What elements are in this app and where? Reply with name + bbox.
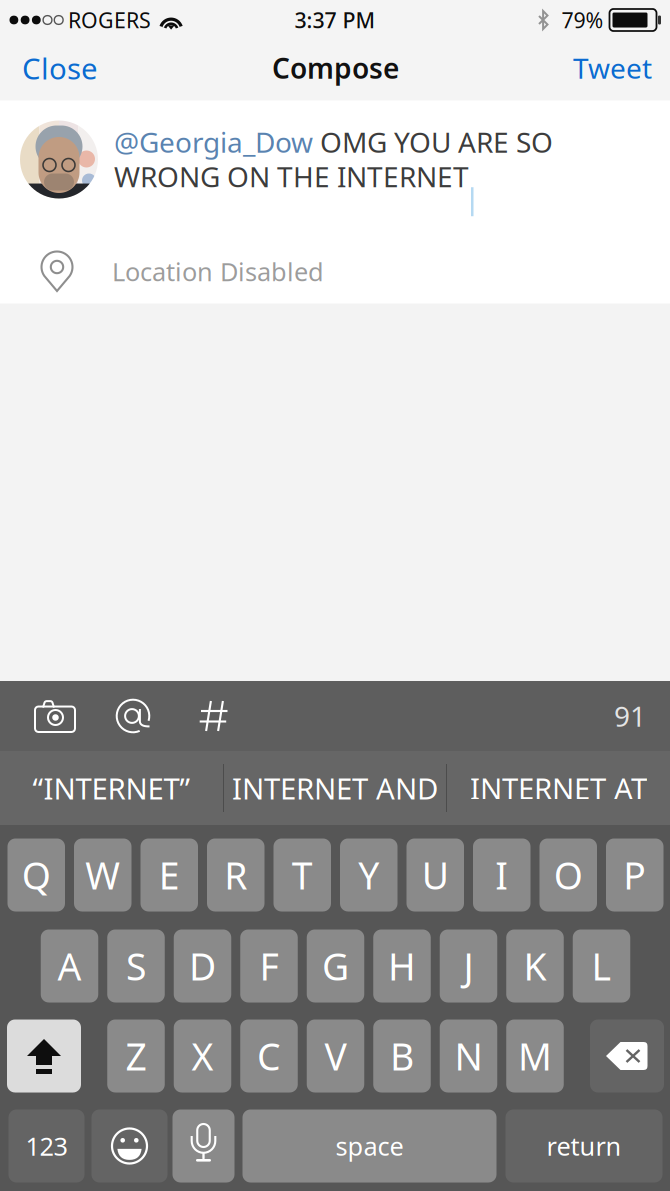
button[interactable]: Emoji keyboard bbox=[91, 1109, 167, 1182]
button[interactable]: X bbox=[174, 1019, 231, 1092]
button[interactable]: Z bbox=[107, 1019, 165, 1092]
staticText: E bbox=[159, 850, 180, 900]
staticText: Location Disabled bbox=[112, 255, 324, 288]
staticText: Close bbox=[22, 48, 98, 87]
staticText: @Georgia_Dow bbox=[114, 123, 313, 161]
button[interactable]: Close bbox=[0, 36, 124, 99]
staticText: I bbox=[495, 850, 508, 900]
button[interactable]: R bbox=[207, 838, 264, 911]
staticText: Compose bbox=[272, 49, 399, 87]
staticText: D bbox=[189, 941, 216, 991]
staticText: H bbox=[388, 941, 416, 991]
button[interactable]: A bbox=[41, 929, 98, 1002]
button[interactable]: Q bbox=[7, 838, 65, 911]
button[interactable]: F bbox=[240, 929, 298, 1002]
staticText: F bbox=[259, 941, 278, 991]
staticText: 3:37 PM bbox=[294, 6, 375, 34]
button[interactable]: V bbox=[307, 1019, 364, 1092]
button[interactable]: S bbox=[107, 929, 165, 1002]
button[interactable]: Location Disabled bbox=[0, 242, 670, 300]
button[interactable]: N bbox=[440, 1019, 497, 1092]
button[interactable]: space bbox=[242, 1109, 496, 1182]
staticText: INTERNET AT bbox=[470, 768, 647, 807]
staticText: O bbox=[554, 850, 583, 900]
staticText: space bbox=[335, 1129, 403, 1163]
staticText: N bbox=[454, 1031, 482, 1081]
button[interactable]: Y bbox=[340, 838, 397, 911]
staticText: S bbox=[126, 941, 146, 991]
staticText: 91 bbox=[614, 697, 646, 735]
staticText: Z bbox=[125, 1031, 146, 1081]
button[interactable]: Dictation bbox=[172, 1109, 234, 1182]
staticText: ROGERS bbox=[68, 6, 151, 34]
button[interactable]: T bbox=[273, 838, 331, 911]
staticText: L bbox=[591, 941, 611, 991]
staticText: M bbox=[518, 1031, 552, 1081]
button[interactable]: INTERNET AT bbox=[447, 751, 670, 825]
button[interactable]: INTERNET AND bbox=[224, 751, 446, 825]
staticText: C bbox=[257, 1031, 281, 1081]
button[interactable]: “INTERNET” bbox=[0, 751, 223, 825]
button[interactable]: B bbox=[373, 1019, 431, 1092]
staticText: B bbox=[390, 1031, 414, 1081]
button[interactable]: L bbox=[573, 929, 630, 1002]
button[interactable]: K bbox=[506, 929, 564, 1002]
staticText: Tweet bbox=[573, 49, 652, 87]
button[interactable]: H bbox=[373, 929, 431, 1002]
staticText: 123 bbox=[25, 1129, 67, 1163]
staticText: “INTERNET” bbox=[32, 768, 190, 807]
staticText: A bbox=[57, 941, 81, 991]
button[interactable]: 123 bbox=[8, 1109, 84, 1182]
button[interactable]: Add hashtag bbox=[176, 681, 252, 751]
staticText: INTERNET AND bbox=[232, 768, 438, 807]
staticText: OMG YOU ARE SO bbox=[313, 123, 553, 161]
button[interactable]: Tweet bbox=[547, 36, 670, 99]
button[interactable]: P bbox=[606, 838, 663, 911]
button[interactable]: G bbox=[307, 929, 364, 1002]
staticText: U bbox=[422, 850, 449, 900]
staticText: R bbox=[224, 850, 247, 900]
staticText: J bbox=[463, 941, 473, 991]
button[interactable]: Shift bbox=[7, 1019, 81, 1092]
staticText: V bbox=[324, 1031, 346, 1081]
button[interactable]: C bbox=[240, 1019, 298, 1092]
button[interactable]: W bbox=[74, 838, 131, 911]
staticText: T bbox=[292, 850, 313, 900]
button[interactable]: M bbox=[506, 1019, 564, 1092]
staticText: return bbox=[546, 1129, 621, 1163]
staticText: K bbox=[523, 941, 546, 991]
staticText: Q bbox=[22, 850, 51, 900]
staticText: Y bbox=[358, 850, 379, 900]
button[interactable]: O bbox=[539, 838, 597, 911]
button[interactable]: Add photo bbox=[18, 681, 92, 751]
staticText: WRONG ON THE INTERNET bbox=[114, 158, 469, 195]
staticText: P bbox=[623, 850, 646, 900]
staticText: X bbox=[191, 1031, 213, 1081]
staticText: 79% bbox=[561, 6, 603, 34]
button[interactable]: return bbox=[505, 1109, 662, 1182]
button[interactable]: Delete bbox=[590, 1019, 664, 1092]
staticText: G bbox=[322, 941, 349, 991]
button[interactable]: J bbox=[440, 929, 497, 1002]
button[interactable]: I bbox=[473, 838, 530, 911]
button[interactable]: D bbox=[174, 929, 231, 1002]
button[interactable]: E bbox=[140, 838, 198, 911]
button[interactable]: Mention someone bbox=[92, 681, 176, 751]
staticText: W bbox=[85, 850, 120, 900]
button[interactable]: U bbox=[406, 838, 464, 911]
